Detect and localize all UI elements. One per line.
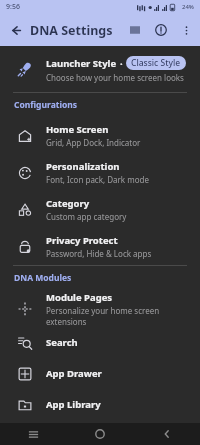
- button[interactable]: Module Pages: [0, 290, 200, 327]
- staticText: Privacy Protect: [46, 234, 118, 247]
- staticText: Search: [46, 336, 78, 349]
- staticText: Module Pages: [46, 291, 113, 304]
- staticText: Category: [46, 197, 90, 210]
- staticText: App Library: [46, 398, 101, 411]
- staticText: ·: [120, 57, 123, 70]
- staticText: DNA Modules: [14, 272, 72, 284]
- button[interactable]: Home Screen: [0, 117, 200, 154]
- button[interactable]: Recent apps: [0, 423, 66, 445]
- staticText: Configurations: [14, 99, 78, 111]
- button[interactable]: Category: [0, 191, 200, 228]
- button[interactable]: Search: [0, 327, 200, 358]
- button[interactable]: Widgets: [122, 17, 148, 43]
- staticText: DNA Settings: [30, 22, 113, 39]
- button[interactable]: More options: [174, 18, 198, 42]
- staticText: Choose how your home screen looks: [46, 72, 184, 83]
- staticText: Password, Hide & Lock apps: [46, 248, 152, 259]
- staticText: Grid, App Dock, Indicator: [46, 137, 141, 148]
- staticText: 24%: [182, 3, 194, 11]
- staticText: Custom app category: [46, 211, 127, 222]
- button[interactable]: Launcher Style: [0, 46, 200, 92]
- button[interactable]: Back: [0, 15, 30, 45]
- button[interactable]: Privacy Protect: [0, 228, 200, 265]
- staticText: Personalization: [46, 160, 120, 173]
- staticText: Home Screen: [46, 123, 109, 136]
- staticText: Font, Icon pack, Dark mode: [46, 174, 149, 185]
- button[interactable]: Info: [148, 17, 174, 43]
- staticText: 9:56: [6, 2, 20, 12]
- button[interactable]: Back: [133, 423, 200, 445]
- button[interactable]: App Drawer: [0, 358, 200, 389]
- staticText: Personalize your home screen extensions: [46, 305, 190, 327]
- staticText: Classic Style: [131, 57, 181, 69]
- staticText: App Drawer: [46, 367, 102, 380]
- button[interactable]: Home: [66, 423, 133, 445]
- button[interactable]: App Library: [0, 389, 200, 420]
- button[interactable]: Personalization: [0, 154, 200, 191]
- staticText: Launcher Style: [46, 57, 117, 70]
